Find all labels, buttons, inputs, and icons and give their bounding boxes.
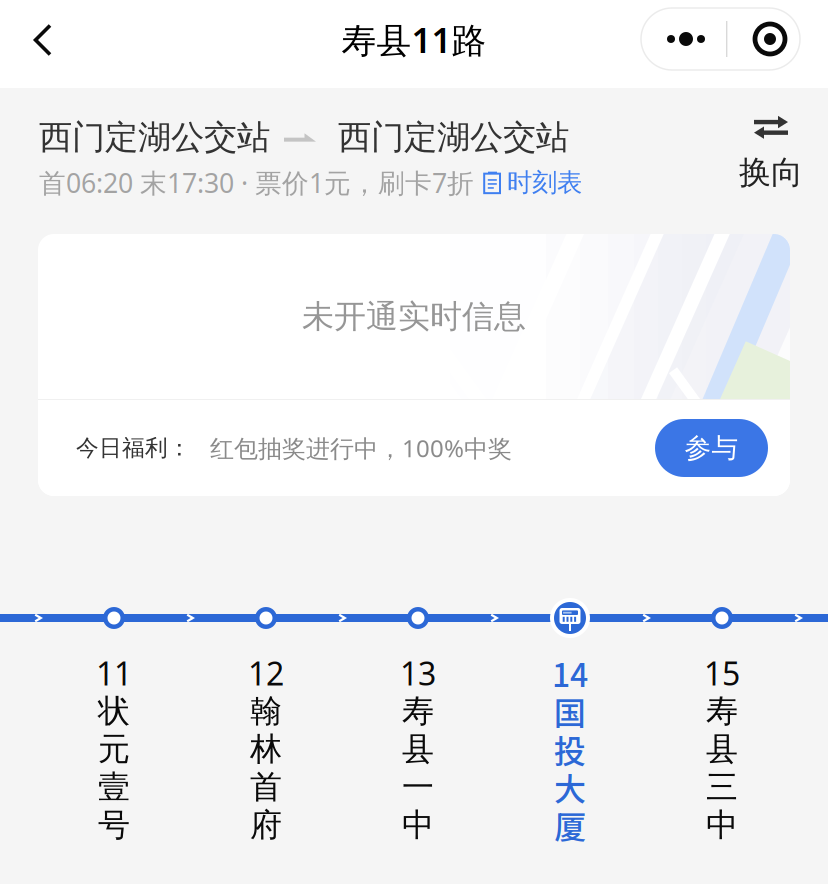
staticText: 三: [706, 767, 738, 807]
staticText: 未开通实时信息: [302, 297, 526, 336]
staticText: 西门定湖公交站: [338, 117, 569, 158]
staticText: 首: [250, 767, 282, 807]
button[interactable]: 换向: [723, 116, 819, 192]
staticText: 15: [704, 652, 740, 694]
staticText: 换向: [739, 153, 803, 192]
staticText: 府: [250, 805, 282, 845]
staticText: 国: [554, 688, 586, 734]
staticText: 翰: [250, 691, 282, 731]
staticText: 寿: [402, 691, 434, 731]
button[interactable]: More options: [643, 8, 729, 70]
button[interactable]: 参与: [655, 419, 768, 477]
staticText: 林: [250, 729, 282, 769]
staticText: 县: [402, 729, 434, 769]
staticText: 元: [98, 729, 130, 769]
button[interactable]: Back: [0, 0, 86, 80]
staticText: 县: [706, 729, 738, 769]
staticText: 参与: [684, 432, 738, 464]
staticText: 中: [402, 805, 434, 845]
staticText: 大: [554, 764, 586, 810]
staticText: 一: [402, 767, 434, 807]
staticText: 13: [400, 652, 436, 694]
staticText: 投: [554, 726, 586, 772]
button[interactable]: Close mini program: [734, 8, 806, 70]
staticText: 首06:20 末17:30 · 票价1元，刷卡7折: [39, 165, 474, 200]
staticText: 红包抽奖进行中，100%中奖: [210, 432, 512, 464]
staticText: 西门定湖公交站: [39, 117, 270, 158]
staticText: 寿: [706, 691, 738, 731]
staticText: 11: [96, 652, 132, 694]
staticText: 12: [248, 652, 284, 694]
staticText: 中: [706, 805, 738, 845]
staticText: 14: [552, 650, 588, 696]
staticText: 号: [98, 805, 130, 845]
button[interactable]: 时刻表: [474, 167, 582, 198]
staticText: 今日福利：: [76, 434, 191, 462]
staticText: 壹: [98, 767, 130, 807]
staticText: 状: [98, 691, 130, 731]
staticText: 厦: [554, 802, 586, 848]
staticText: 寿县11路: [341, 16, 486, 62]
staticText: 时刻表: [507, 167, 582, 198]
